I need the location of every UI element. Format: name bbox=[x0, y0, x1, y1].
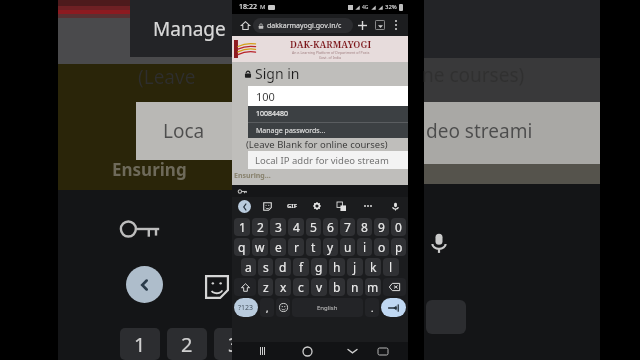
button[interactable]: 2 bbox=[252, 218, 268, 236]
staticText: 7 bbox=[344, 219, 351, 235]
staticText: k bbox=[370, 259, 377, 275]
staticText: English bbox=[317, 304, 338, 312]
button[interactable]: 7 bbox=[340, 218, 355, 236]
staticText: 2 bbox=[257, 219, 264, 235]
button[interactable]: Home bbox=[298, 342, 316, 360]
button[interactable]: m bbox=[365, 278, 381, 296]
button[interactable]: t bbox=[306, 238, 321, 256]
button[interactable]: Back bbox=[238, 200, 251, 213]
button[interactable]: Home bbox=[237, 17, 253, 33]
button[interactable]: x bbox=[275, 278, 291, 296]
staticText: deo streami bbox=[426, 118, 533, 144]
button[interactable]: l bbox=[383, 258, 399, 276]
button[interactable]: c bbox=[293, 278, 309, 296]
staticText: 4 bbox=[293, 219, 300, 235]
staticText: Manage bbox=[153, 16, 226, 42]
button[interactable]: 1 bbox=[234, 218, 250, 236]
button[interactable]: Emoji bbox=[276, 298, 290, 317]
button[interactable]: 5 bbox=[306, 218, 321, 236]
button[interactable]: o bbox=[374, 238, 389, 256]
button[interactable]: Local IP addr for video stream bbox=[248, 151, 408, 169]
button[interactable]: Translate bbox=[334, 199, 348, 213]
staticText: dakkarmayogi.gov.in/c bbox=[267, 21, 342, 31]
staticText: 9 bbox=[378, 219, 385, 235]
button[interactable]: n bbox=[347, 278, 363, 296]
button[interactable]: Stickers bbox=[260, 199, 274, 213]
staticText: e bbox=[275, 239, 282, 255]
staticText: Local IP addr for video stream bbox=[255, 154, 389, 167]
button[interactable]: y bbox=[323, 238, 338, 256]
staticText: b bbox=[333, 279, 341, 295]
button[interactable]: GIF bbox=[284, 198, 300, 214]
button[interactable]: q bbox=[234, 238, 250, 256]
button[interactable]: j bbox=[347, 258, 363, 276]
staticText: 5 bbox=[310, 219, 317, 235]
staticText: 6 bbox=[327, 219, 334, 235]
button[interactable]: Hide keyboard bbox=[343, 342, 361, 360]
staticText: q bbox=[238, 239, 246, 255]
staticText: 100 bbox=[256, 89, 275, 104]
button[interactable]: z bbox=[258, 278, 273, 296]
button[interactable]: Recents bbox=[253, 342, 271, 360]
staticText: ?123 bbox=[238, 303, 254, 313]
button[interactable]: s bbox=[258, 258, 273, 276]
staticText: 32% bbox=[385, 3, 397, 11]
button[interactable]: Switch keyboard bbox=[375, 343, 391, 359]
button[interactable]: i bbox=[357, 238, 372, 256]
staticText: Loca bbox=[163, 118, 205, 144]
staticText: m bbox=[367, 279, 379, 295]
staticText: Govt. of India bbox=[319, 55, 342, 60]
staticText: M bbox=[260, 3, 266, 11]
staticText: (Leave Blank for online courses) bbox=[246, 138, 388, 151]
button[interactable]: Tabs bbox=[371, 16, 389, 34]
button[interactable]: Comma bbox=[260, 298, 274, 317]
button[interactable]: v bbox=[311, 278, 327, 296]
button[interactable]: 9 bbox=[374, 218, 389, 236]
button[interactable]: Settings bbox=[310, 199, 324, 213]
button[interactable]: 10084480 bbox=[248, 106, 408, 122]
button[interactable]: 4 bbox=[288, 218, 304, 236]
button[interactable]: 100 bbox=[248, 86, 408, 106]
staticText: 4G bbox=[362, 4, 369, 11]
staticText: x bbox=[280, 279, 287, 295]
staticText: Ensuring bbox=[112, 158, 187, 181]
button[interactable]: More bbox=[361, 199, 375, 213]
button[interactable]: ?123 bbox=[234, 298, 258, 317]
button[interactable]: p bbox=[391, 238, 406, 256]
button[interactable]: Voice input bbox=[388, 199, 402, 213]
button[interactable]: r bbox=[288, 238, 304, 256]
button[interactable]: k bbox=[365, 258, 381, 276]
staticText: v bbox=[316, 279, 323, 295]
button[interactable]: Enter bbox=[381, 298, 406, 317]
button[interactable]: Manage passwords… bbox=[248, 123, 408, 138]
button[interactable]: English bbox=[292, 298, 363, 317]
staticText: r bbox=[294, 239, 299, 255]
staticText: 8 bbox=[361, 219, 368, 235]
staticText: Ensuring… bbox=[234, 171, 271, 181]
button[interactable]: u bbox=[340, 238, 355, 256]
button[interactable]: h bbox=[329, 258, 345, 276]
button[interactable]: b bbox=[329, 278, 345, 296]
staticText: ne courses) bbox=[422, 62, 525, 88]
staticText: 10084480 bbox=[256, 109, 289, 119]
staticText: a bbox=[245, 259, 252, 275]
button[interactable]: d bbox=[275, 258, 291, 276]
button[interactable]: Backspace bbox=[383, 278, 406, 296]
button[interactable]: g bbox=[311, 258, 327, 276]
button[interactable]: 3 bbox=[270, 218, 286, 236]
staticText: y bbox=[327, 239, 334, 255]
button[interactable]: a bbox=[241, 258, 256, 276]
button[interactable]: dakkarmayogi.gov.in/c bbox=[253, 18, 353, 33]
button[interactable]: More options bbox=[389, 18, 403, 32]
button[interactable]: 6 bbox=[323, 218, 338, 236]
button[interactable]: New tab bbox=[353, 16, 371, 34]
button[interactable]: 8 bbox=[357, 218, 372, 236]
staticText: f bbox=[299, 259, 304, 275]
button[interactable]: e bbox=[270, 238, 286, 256]
button[interactable]: 0 bbox=[391, 218, 406, 236]
button[interactable]: f bbox=[293, 258, 309, 276]
button[interactable]: Shift bbox=[234, 278, 256, 296]
staticText: Sign in bbox=[255, 64, 300, 83]
button[interactable]: w bbox=[252, 238, 268, 256]
button[interactable]: Period bbox=[365, 298, 379, 317]
